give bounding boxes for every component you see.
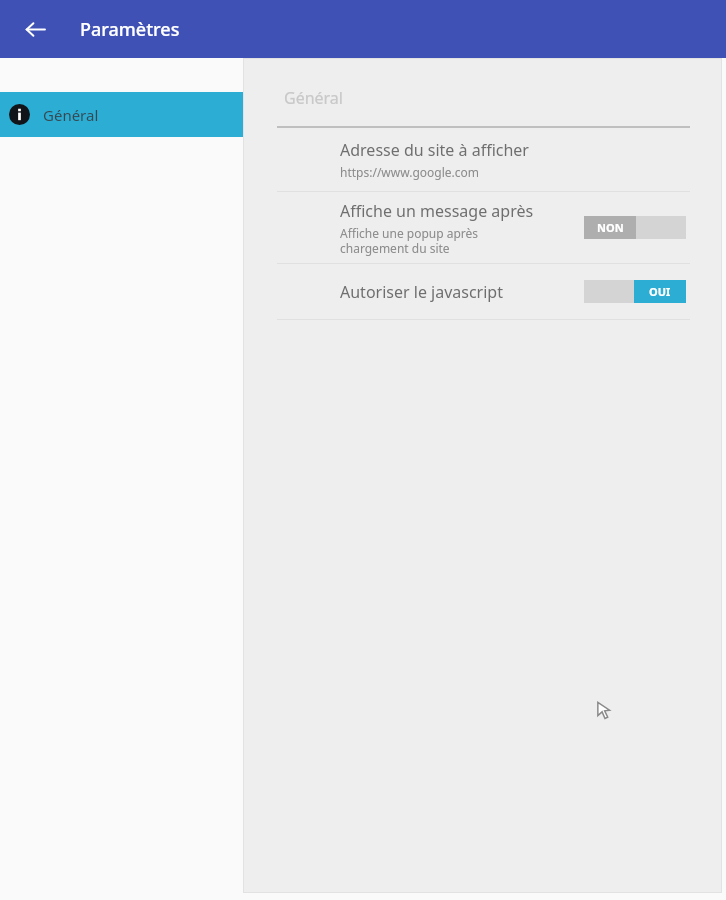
staticText: Autoriser le javascript [340, 281, 503, 303]
button[interactable]: Retour [15, 9, 55, 49]
staticText: Affiche un message après [340, 200, 534, 222]
staticText: NON [597, 220, 624, 235]
button[interactable]: Activé [584, 280, 686, 303]
button[interactable]: Désactivé [584, 216, 686, 239]
staticText: Adresse du site à afficher [340, 139, 529, 161]
button[interactable]: Affiche un message après [244, 192, 721, 263]
button[interactable]: Adresse du site à afficher [244, 128, 721, 191]
staticText: Général [43, 105, 99, 125]
staticText: Paramètres [80, 17, 180, 42]
staticText: Général [284, 87, 343, 109]
staticText: https://www.google.com [340, 164, 479, 180]
button[interactable]: Autoriser le javascript [244, 264, 721, 319]
button[interactable]: Général [0, 92, 243, 137]
staticText: Affiche une popup après chargement du si… [340, 225, 479, 256]
staticText: OUI [649, 284, 671, 299]
